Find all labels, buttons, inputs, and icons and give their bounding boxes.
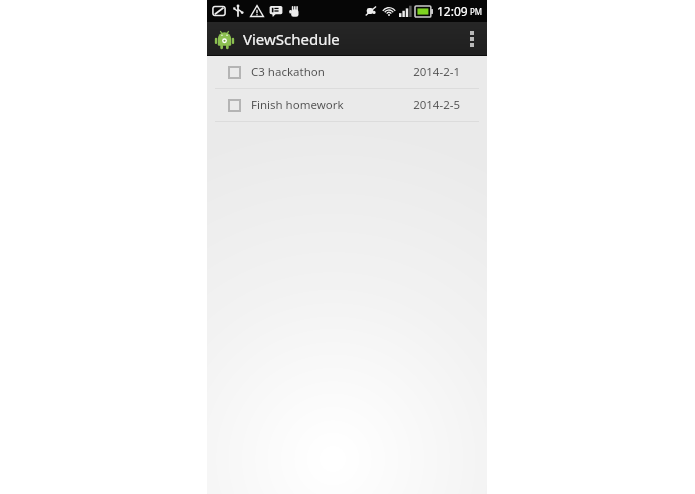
button[interactable]: Toggle C3 hackathon xyxy=(207,56,487,88)
staticText: 2014-2-5 xyxy=(413,97,460,113)
staticText: C3 hackathon xyxy=(251,64,325,80)
button[interactable]: More options xyxy=(457,22,487,56)
staticText: 12:09 xyxy=(437,3,468,19)
staticText: 2014-2-1 xyxy=(413,64,460,80)
staticText: Finish homework xyxy=(251,97,344,113)
button[interactable]: Toggle Finish homework xyxy=(207,89,487,121)
button[interactable]: Toggle Finish homework xyxy=(222,93,246,117)
staticText: ViewSchedule xyxy=(243,29,340,49)
staticText: PM xyxy=(470,6,483,17)
button[interactable]: Toggle C3 hackathon xyxy=(222,60,246,84)
